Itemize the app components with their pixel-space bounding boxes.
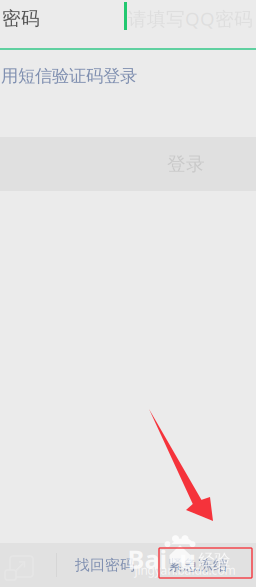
staticText: 经验 <box>198 550 230 570</box>
staticText: 登录 <box>167 152 205 175</box>
staticText: u <box>179 542 195 576</box>
staticText: 请填写QQ密码 <box>128 6 253 31</box>
staticText: 找回密码 <box>75 556 135 574</box>
button[interactable]: 找回密码 <box>65 543 145 587</box>
staticText: 用短信验证码登录 <box>1 65 137 87</box>
staticText: 密码 <box>2 7 40 30</box>
staticText: jingyan.baidu.com <box>134 562 235 578</box>
staticText: Bai <box>127 542 167 576</box>
button[interactable]: 用短信验证码登录 <box>0 59 256 93</box>
staticText: 紧急冻结 <box>168 556 228 574</box>
button[interactable]: 紧急冻结 <box>158 543 238 587</box>
